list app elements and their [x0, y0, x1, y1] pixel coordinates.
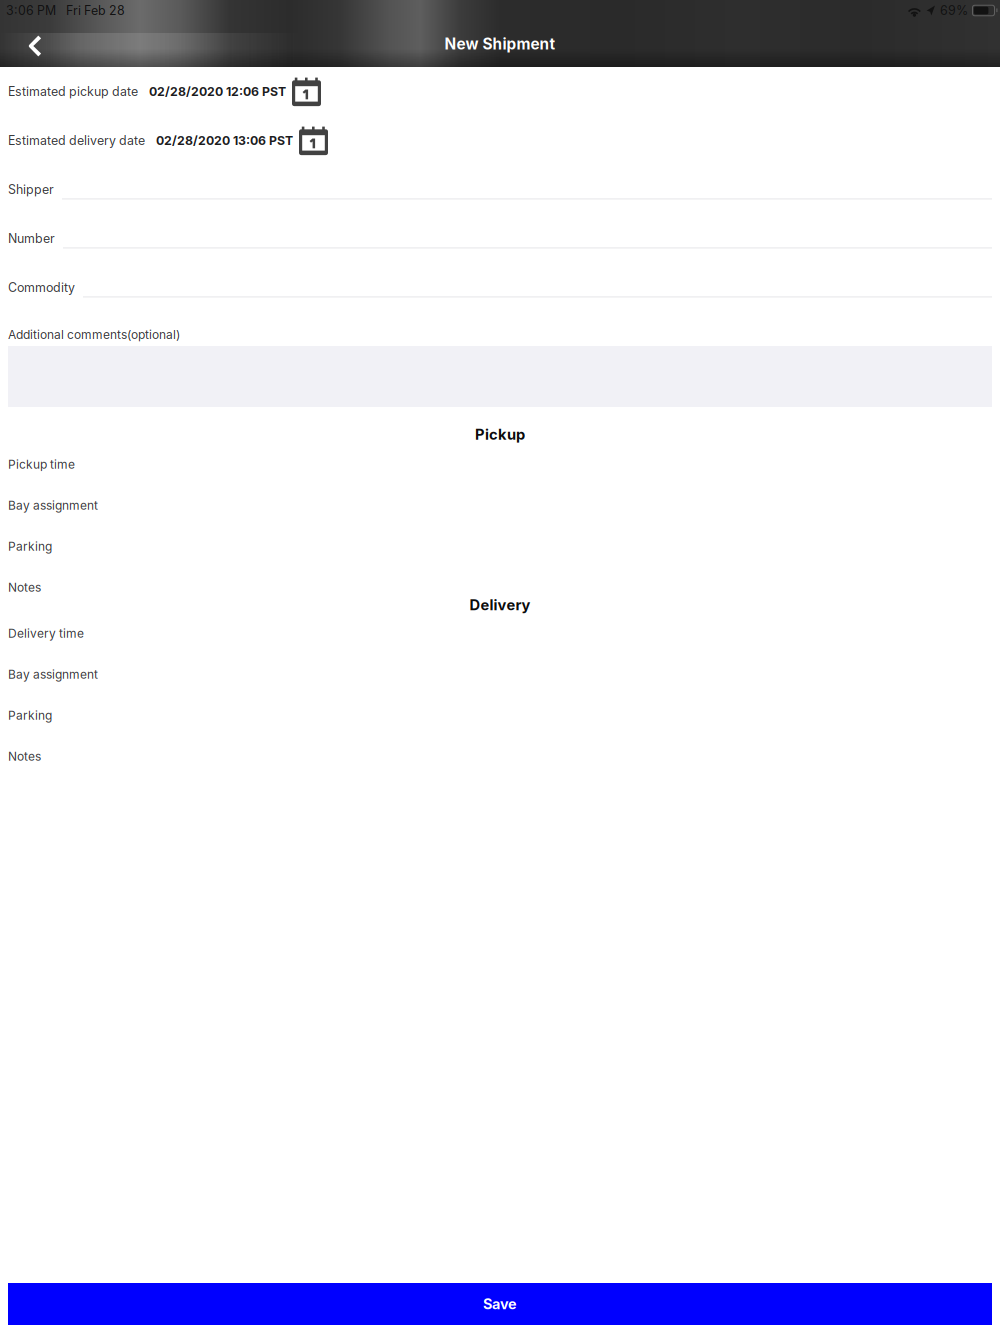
button[interactable]: Commodity	[0, 263, 1000, 312]
button[interactable]: Parking	[0, 695, 1000, 736]
staticText: Delivery	[469, 596, 530, 614]
button[interactable]: Notes	[0, 736, 1000, 777]
button[interactable]: Number	[0, 214, 1000, 263]
staticText: 02/28/2020 12:06 PST	[149, 84, 286, 99]
staticText: Estimated delivery date	[8, 133, 145, 148]
staticText: Bay assignment	[8, 498, 98, 513]
button[interactable]: Parking	[0, 526, 1000, 567]
staticText: Parking	[8, 708, 52, 723]
button[interactable]: Pickup time	[0, 444, 1000, 485]
staticText: New Shipment	[444, 35, 555, 53]
button[interactable]: Save	[0, 1283, 1000, 1325]
staticText: Bay assignment	[8, 667, 98, 682]
staticText: 69%	[940, 3, 968, 18]
button[interactable]: Bay assignment	[0, 485, 1000, 526]
staticText: Fri Feb 28	[66, 3, 125, 18]
staticText: Pickup time	[8, 457, 75, 472]
staticText: Notes	[8, 749, 41, 764]
staticText: 3:06 PM	[6, 3, 56, 18]
button[interactable]: Shipper	[0, 165, 1000, 214]
button[interactable]: Delivery time	[0, 613, 1000, 654]
staticText: 02/28/2020 13:06 PST	[156, 133, 293, 148]
staticText: Notes	[8, 580, 41, 595]
button[interactable]: Notes	[0, 567, 1000, 608]
staticText: Additional comments(optional)	[8, 327, 180, 342]
staticText: Estimated pickup date	[8, 84, 138, 99]
staticText: Shipper	[8, 182, 54, 197]
staticText: Commodity	[8, 280, 75, 295]
staticText: Delivery time	[8, 626, 84, 641]
staticText: Number	[8, 231, 55, 246]
staticText: Save	[483, 1295, 517, 1313]
staticText: Pickup	[475, 426, 525, 443]
button[interactable]: Bay assignment	[0, 654, 1000, 695]
staticText: Parking	[8, 539, 52, 554]
button[interactable]: Back	[0, 18, 70, 70]
button[interactable]: Estimated pickup date	[0, 67, 1000, 116]
button[interactable]: Estimated delivery date	[0, 116, 1000, 165]
